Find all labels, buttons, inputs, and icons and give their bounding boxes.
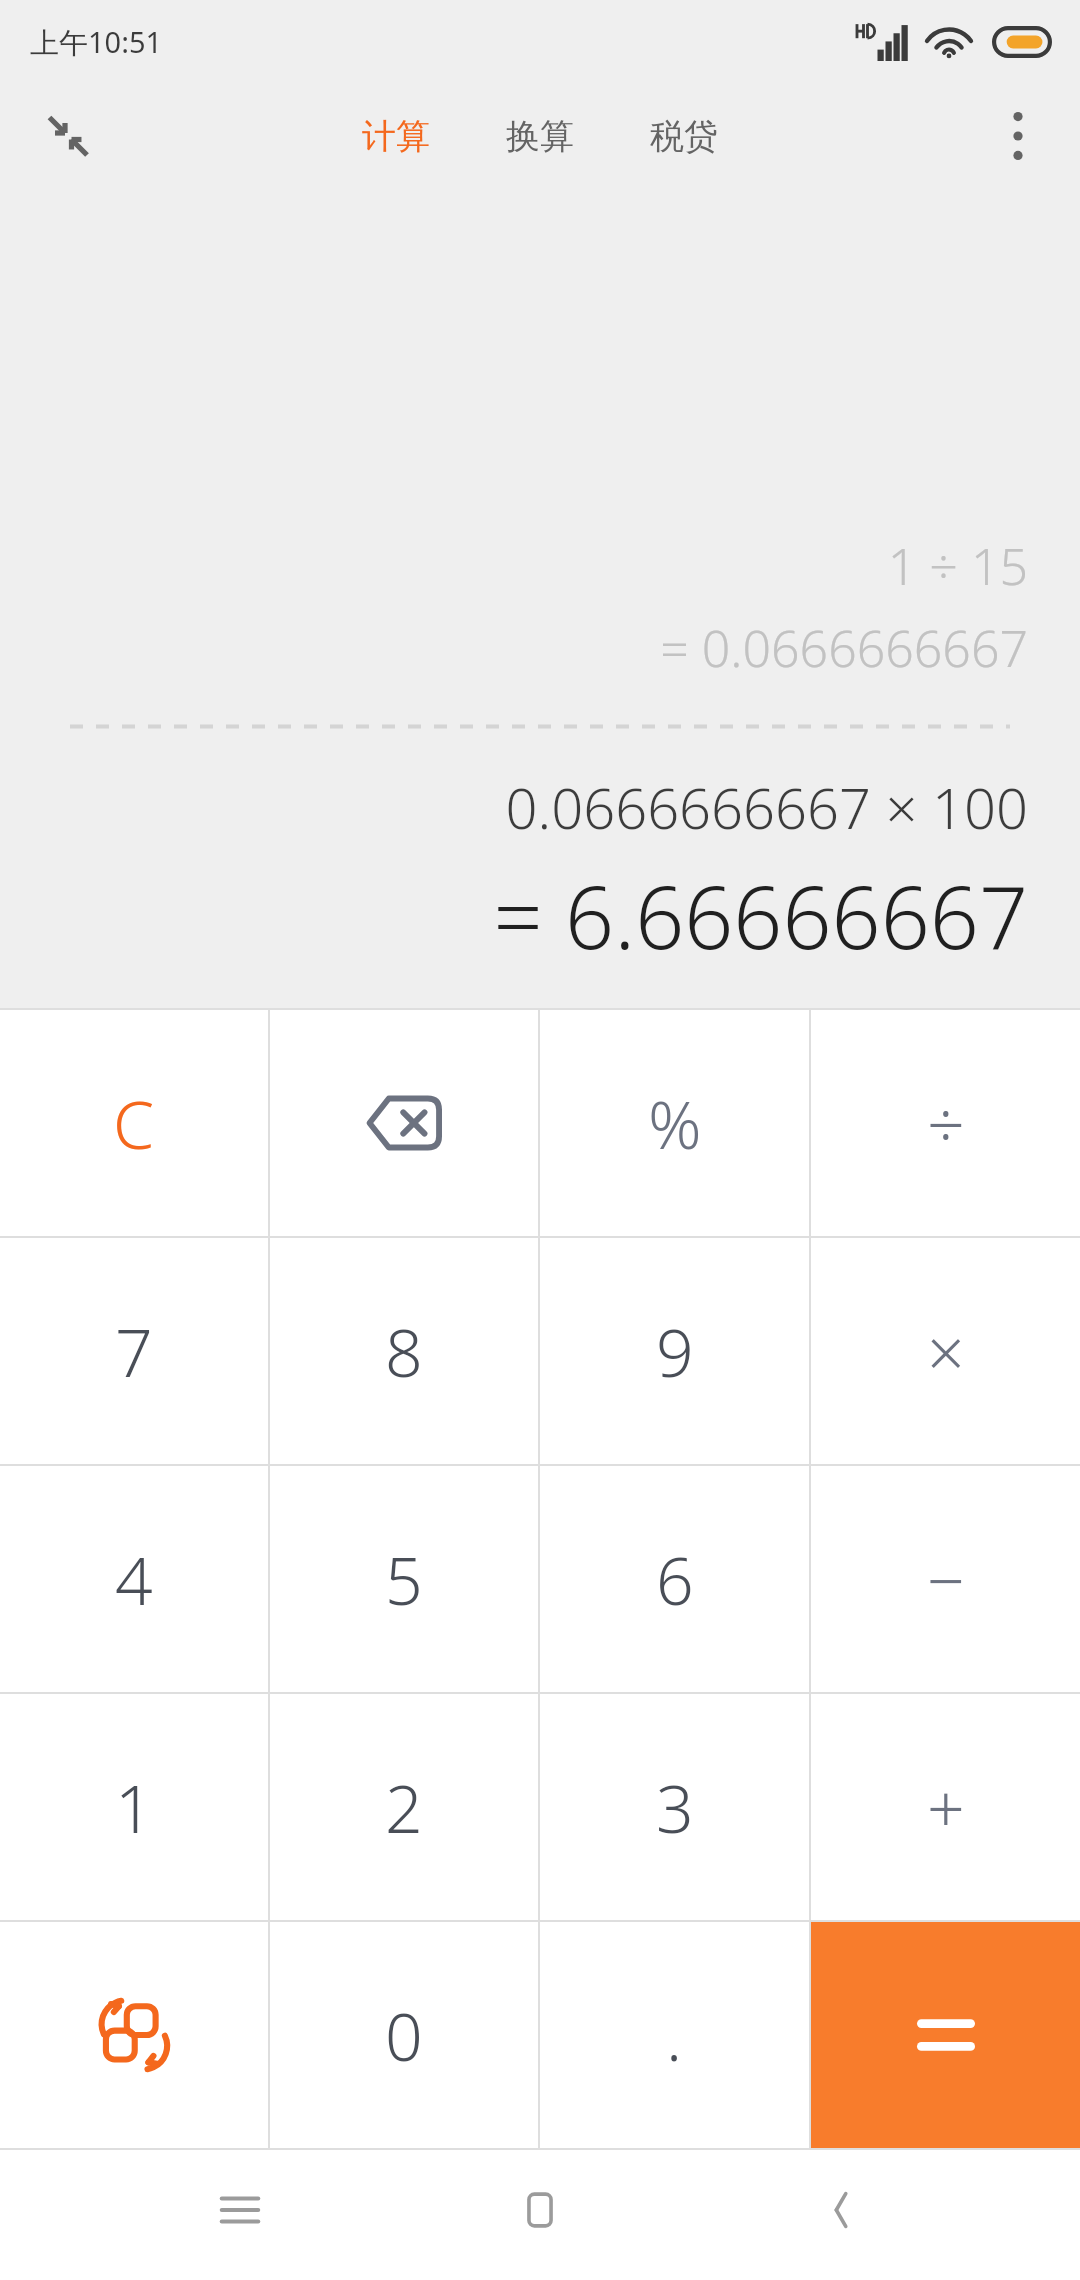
staticText: + bbox=[927, 1762, 965, 1852]
button[interactable]: 1 bbox=[0, 1694, 268, 1920]
staticText: 9 bbox=[656, 1306, 694, 1396]
staticText: . bbox=[666, 1990, 683, 2080]
button[interactable]: 换算 bbox=[490, 99, 590, 174]
staticText: % bbox=[648, 1078, 702, 1168]
button[interactable]: − bbox=[811, 1466, 1080, 1692]
button[interactable]: 8 bbox=[270, 1238, 538, 1464]
staticText: × bbox=[927, 1306, 965, 1396]
staticText: 税贷 bbox=[650, 115, 718, 158]
staticText: 上午10:51 bbox=[30, 22, 163, 62]
button[interactable]: 0 bbox=[270, 1922, 538, 2148]
staticText: 0.0666666667 × 100 bbox=[0, 769, 1028, 845]
button[interactable]: 9 bbox=[540, 1238, 809, 1464]
button[interactable]: 7 bbox=[0, 1238, 268, 1464]
staticText: = 0.0666666667 bbox=[0, 614, 1028, 682]
button[interactable]: + bbox=[811, 1694, 1080, 1920]
button[interactable]: 2 bbox=[270, 1694, 538, 1920]
staticText: 1 ÷ 15 bbox=[0, 532, 1028, 600]
button[interactable]: 6 bbox=[540, 1466, 809, 1692]
staticText: 5 bbox=[385, 1534, 423, 1624]
button[interactable]: More options bbox=[970, 88, 1066, 184]
button[interactable]: 税贷 bbox=[634, 99, 734, 174]
staticText: C bbox=[113, 1078, 155, 1168]
button[interactable]: × bbox=[811, 1238, 1080, 1464]
button[interactable]: C bbox=[0, 1010, 268, 1236]
button[interactable]: Back bbox=[780, 2170, 900, 2250]
button[interactable]: Backspace bbox=[270, 1010, 538, 1236]
staticText: 6 bbox=[656, 1534, 694, 1624]
button[interactable]: ÷ bbox=[811, 1010, 1080, 1236]
staticText: 8 bbox=[385, 1306, 423, 1396]
button[interactable]: . bbox=[540, 1922, 809, 2148]
staticText: 3 bbox=[656, 1762, 694, 1852]
button[interactable]: % bbox=[540, 1010, 809, 1236]
button[interactable]: Collapse bbox=[18, 86, 118, 186]
button[interactable]: Equals bbox=[811, 1922, 1080, 2148]
staticText: 1 bbox=[115, 1762, 153, 1852]
staticText: 4 bbox=[115, 1534, 153, 1624]
staticText: 0 bbox=[385, 1990, 423, 2080]
staticText: 2 bbox=[385, 1762, 423, 1852]
button[interactable]: 计算 bbox=[346, 99, 446, 174]
button[interactable]: 4 bbox=[0, 1466, 268, 1692]
staticText: ÷ bbox=[927, 1078, 965, 1168]
button[interactable]: Home bbox=[480, 2170, 600, 2250]
button[interactable]: 3 bbox=[540, 1694, 809, 1920]
staticText: 7 bbox=[115, 1306, 153, 1396]
staticText: − bbox=[927, 1534, 965, 1624]
button[interactable]: Recent apps bbox=[180, 2170, 300, 2250]
button[interactable]: 5 bbox=[270, 1466, 538, 1692]
button[interactable]: Unit converter bbox=[0, 1922, 268, 2148]
staticText: = 6.66666667 bbox=[0, 857, 1028, 974]
staticText: 计算 bbox=[362, 115, 430, 158]
staticText: 换算 bbox=[506, 115, 574, 158]
